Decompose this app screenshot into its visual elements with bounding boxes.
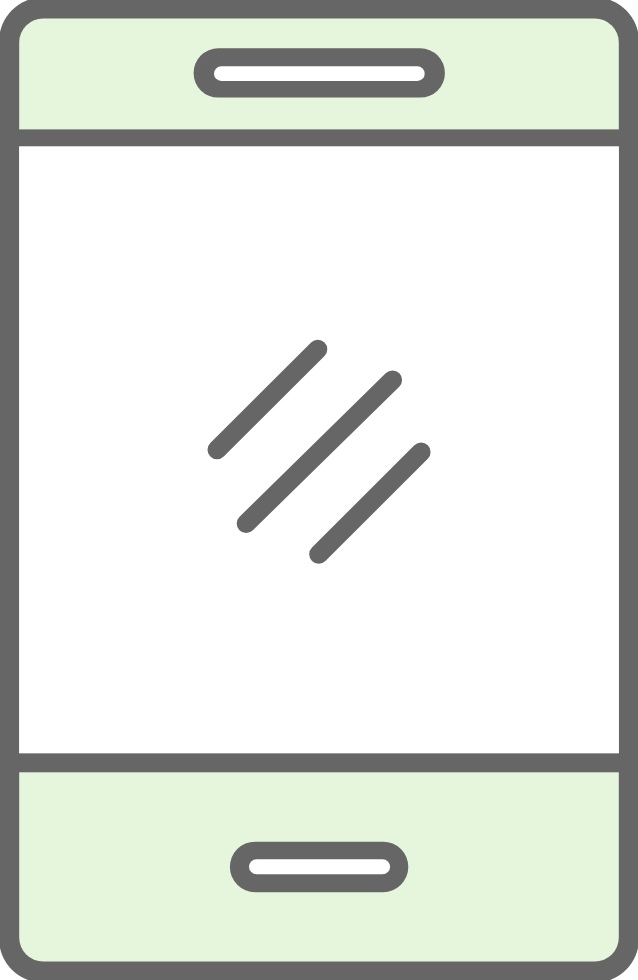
button[interactable]: Smartphone icon	[0, 0, 638, 980]
